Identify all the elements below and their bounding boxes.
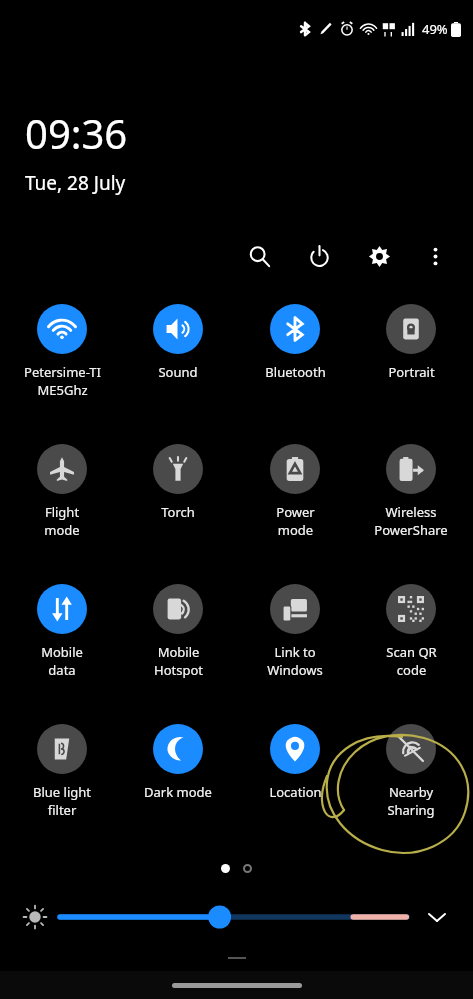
button[interactable]: Link to Windows (240, 584, 350, 679)
button[interactable]: Bluetooth (240, 304, 350, 381)
other: Scan QR code (386, 584, 436, 634)
button[interactable]: Blue light filter (7, 724, 117, 819)
staticText: Nearby Sharing (387, 783, 435, 819)
staticText: Location (269, 783, 322, 801)
button[interactable]: Power off (299, 236, 339, 276)
button[interactable]: Wireless PowerShare (356, 444, 466, 539)
other: Mobile data (37, 584, 87, 634)
staticText: Blue light filter (33, 783, 91, 819)
button[interactable]: Torch (123, 444, 233, 521)
other: Dark mode (153, 724, 203, 774)
other: Blue light filter (37, 724, 87, 774)
staticText: Tue, 28 July (25, 170, 126, 196)
other: Portrait (386, 304, 436, 354)
button[interactable]: Brightness slider (60, 900, 407, 934)
staticText: Mobile data (41, 643, 83, 679)
button[interactable]: Search (239, 236, 279, 276)
button[interactable]: Flight mode (7, 444, 117, 539)
staticText: Portrait (388, 363, 435, 381)
other: Wi-Fi (37, 304, 87, 354)
button[interactable]: Settings (359, 236, 399, 276)
other: Sound (153, 304, 203, 354)
staticText: Power mode (276, 503, 315, 539)
button[interactable]: Dark mode (123, 724, 233, 801)
button[interactable]: Mobile Hotspot (123, 584, 233, 679)
staticText: Flight mode (44, 503, 80, 539)
staticText: Scan QR code (386, 643, 437, 679)
staticText: Dark mode (144, 783, 212, 801)
staticText: 09:36 (25, 106, 128, 160)
button[interactable]: Nearby Sharing (356, 724, 466, 819)
other: Location (270, 724, 320, 774)
staticText: Wireless PowerShare (374, 503, 448, 539)
button[interactable]: Brightness (18, 900, 52, 934)
button[interactable]: More options (415, 236, 455, 276)
button[interactable]: Portrait (356, 304, 466, 381)
other: Torch (153, 444, 203, 494)
staticText: Sound (158, 363, 198, 381)
button[interactable]: Location (240, 724, 350, 801)
staticText: Petersime-TI ME5Ghz (24, 363, 101, 399)
button[interactable]: Mobile data (7, 584, 117, 679)
staticText: Mobile Hotspot (154, 643, 203, 679)
button[interactable]: Power mode (240, 444, 350, 539)
other: Flight mode (37, 444, 87, 494)
staticText: 49% (422, 20, 448, 38)
staticText: Bluetooth (265, 363, 326, 381)
other: Power mode (270, 444, 320, 494)
staticText: Torch (161, 503, 195, 521)
button[interactable]: Sound (123, 304, 233, 381)
other: Nearby Sharing (386, 724, 436, 774)
staticText: Link to Windows (267, 643, 323, 679)
other: Bluetooth (270, 304, 320, 354)
button[interactable]: Wi-Fi (7, 304, 117, 399)
other: Link to Windows (270, 584, 320, 634)
button[interactable]: Scan QR code (356, 584, 466, 679)
button[interactable]: Expand (419, 899, 455, 935)
other: Mobile Hotspot (153, 584, 203, 634)
other: Wireless PowerShare (386, 444, 436, 494)
